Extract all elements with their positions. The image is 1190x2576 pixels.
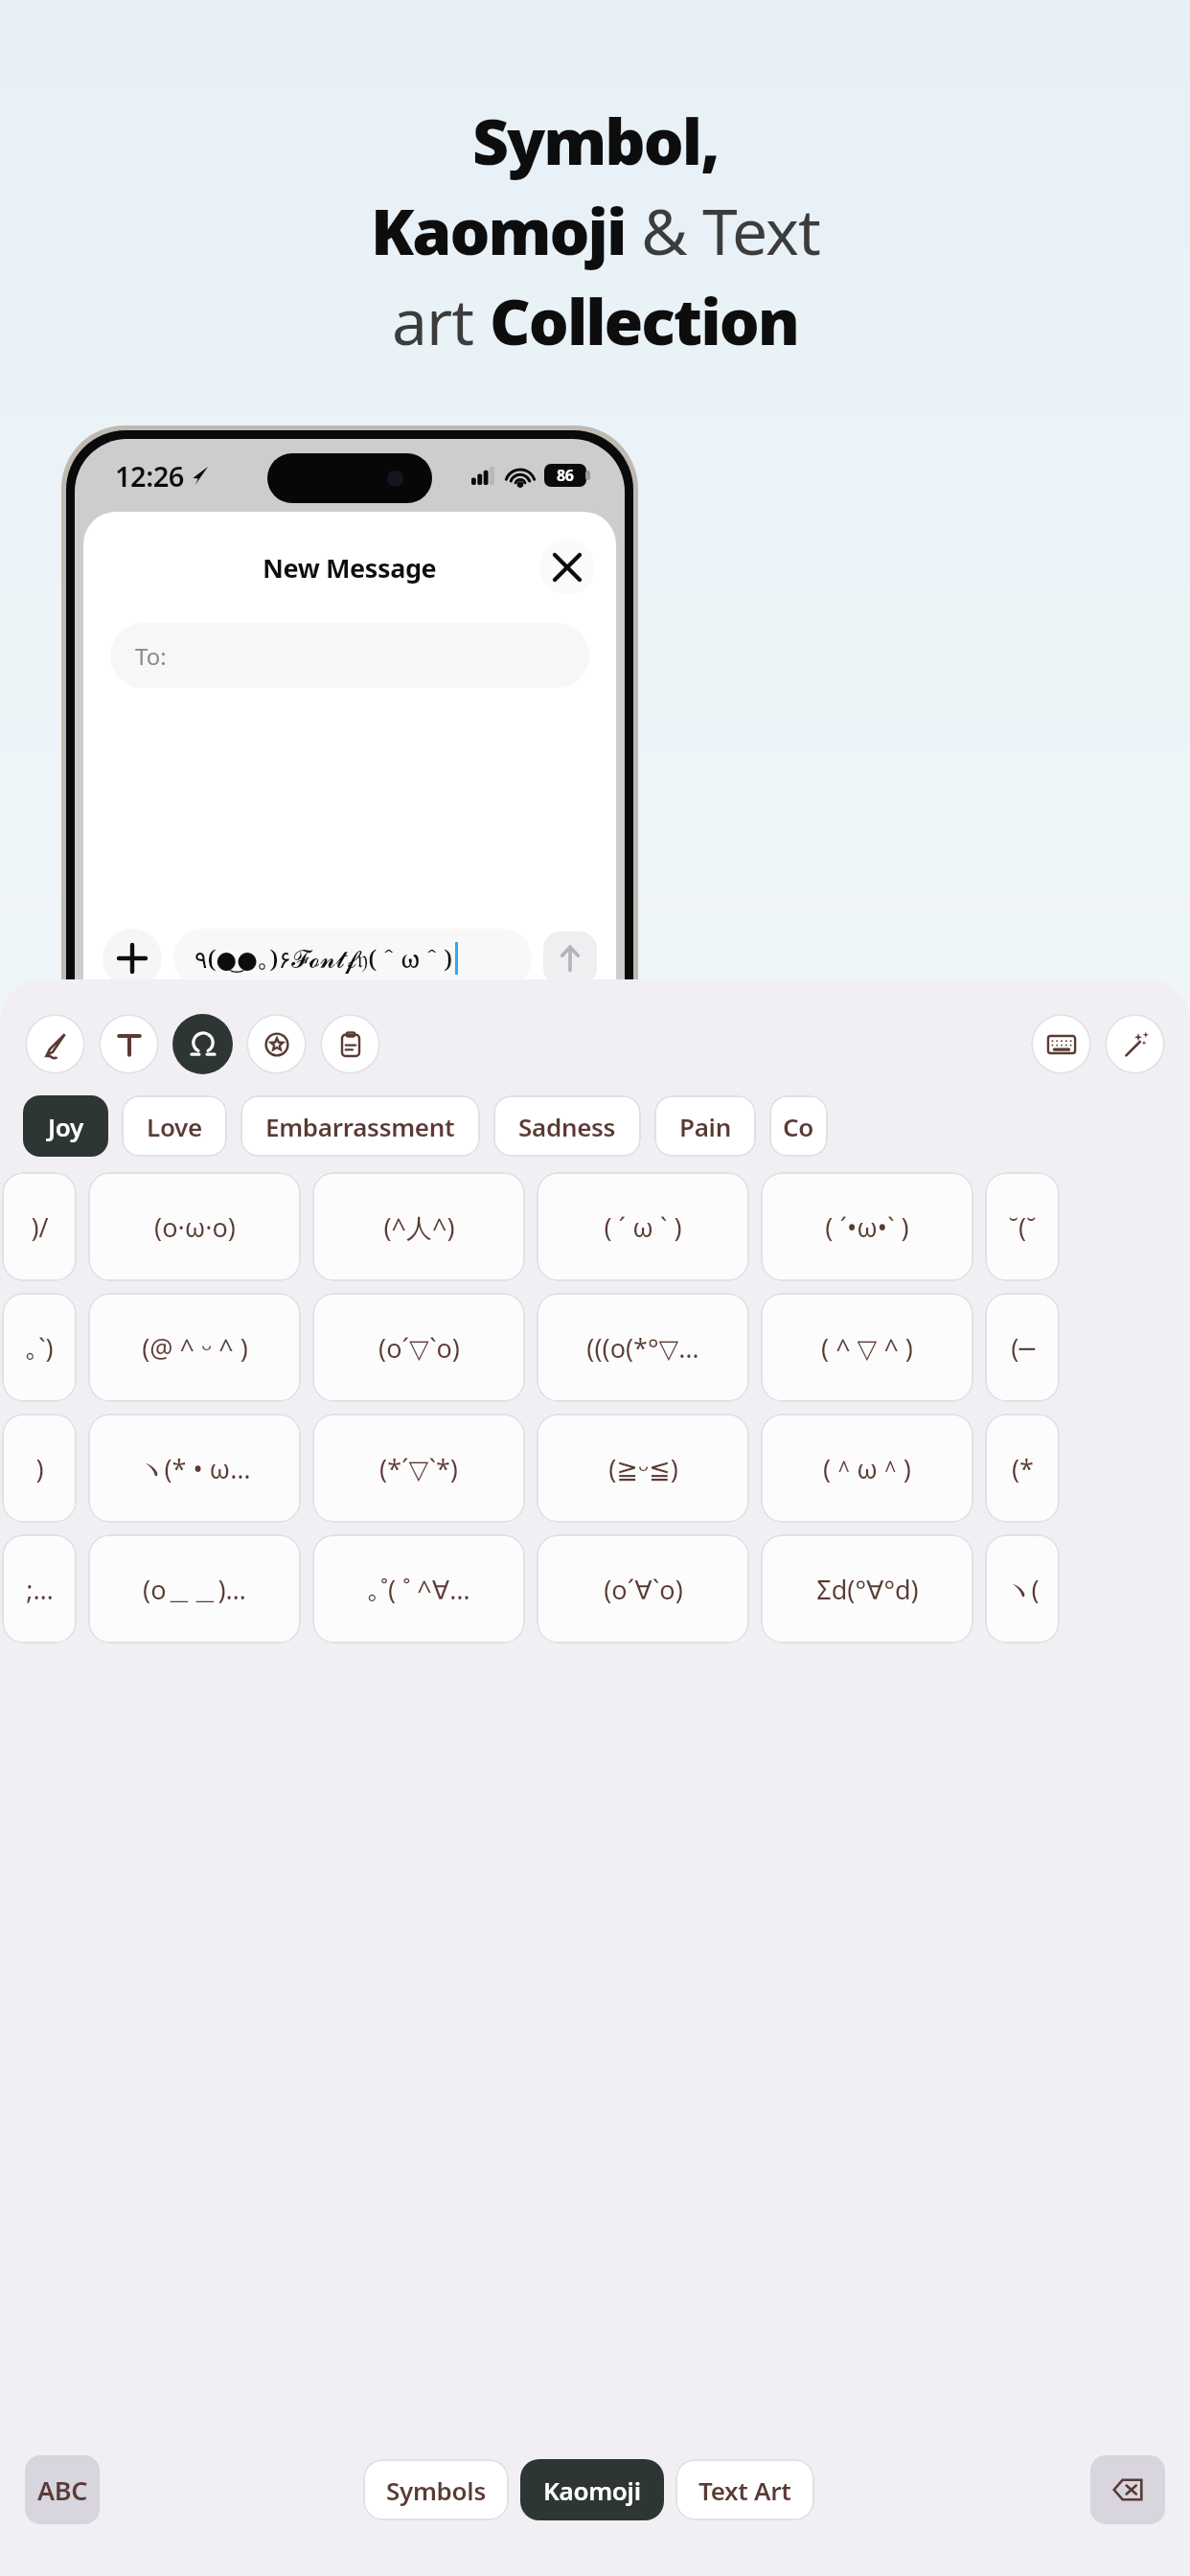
button[interactable]: (─ xyxy=(985,1293,1060,1402)
button[interactable]: Favorites xyxy=(246,1014,307,1074)
button[interactable]: )/ xyxy=(2,1172,77,1281)
staticText: (o·ω·o) xyxy=(154,1209,236,1245)
staticText: Text xyxy=(702,187,820,273)
staticText: ABC xyxy=(37,2472,88,2508)
staticText: Kaomoji xyxy=(371,187,626,273)
button[interactable]: Pain xyxy=(654,1095,756,1157)
button[interactable]: Kaomoji xyxy=(520,2459,664,2520)
staticText: (o＿＿)… xyxy=(143,1572,246,1607)
button[interactable]: (o·ω·o) xyxy=(88,1172,301,1281)
staticText: (^人^) xyxy=(383,1209,455,1245)
staticText: Symbols xyxy=(386,2473,486,2507)
staticText: ( ´•ω•` ) xyxy=(825,1209,909,1245)
staticText: ｡`) xyxy=(25,1330,54,1366)
button[interactable]: Text Art xyxy=(675,2459,814,2520)
staticText: (@ ^ ᵕ ^ ) xyxy=(142,1330,248,1366)
button[interactable]: ˘(˘ xyxy=(985,1172,1060,1281)
staticText: )/ xyxy=(31,1209,49,1245)
staticText: ( ´ ω ` ) xyxy=(604,1209,682,1245)
staticText: New Message xyxy=(263,550,437,586)
staticText: (o´∀`o) xyxy=(604,1572,683,1607)
staticText: & xyxy=(626,187,702,273)
button[interactable]: Co xyxy=(769,1095,828,1157)
staticText: (o´▽`o) xyxy=(378,1330,460,1366)
button[interactable]: ABC xyxy=(25,2455,100,2524)
button[interactable]: (@ ^ ᵕ ^ ) xyxy=(88,1293,301,1402)
staticText: Co xyxy=(783,1110,814,1143)
staticText: ヽ(* • ω… xyxy=(138,1451,251,1486)
button[interactable]: Symbols xyxy=(172,1014,233,1074)
button[interactable]: ;… xyxy=(2,1534,77,1644)
button[interactable]: (* xyxy=(985,1414,1060,1523)
staticText: Joy xyxy=(48,1110,83,1143)
staticText: (＾ω＾) xyxy=(823,1451,911,1486)
staticText: 86 xyxy=(557,465,574,486)
button[interactable]: ) xyxy=(2,1414,77,1523)
button[interactable]: Magic xyxy=(1105,1014,1165,1074)
button[interactable]: ( ^ ▽ ^ ) xyxy=(761,1293,973,1402)
staticText: ٩(●‿●｡)۶𝓕𝓸𝓷𝓽𝓯𝔶(＾ω＾) xyxy=(195,942,453,975)
staticText: Sadness xyxy=(518,1110,616,1143)
button[interactable]: Joy xyxy=(23,1095,108,1157)
button[interactable]: (^人^) xyxy=(312,1172,525,1281)
button[interactable]: ヽ(* • ω… xyxy=(88,1414,301,1523)
button[interactable]: Backspace xyxy=(1090,2455,1165,2524)
staticText: (((o(*°▽… xyxy=(586,1330,699,1366)
button[interactable]: Clipboard xyxy=(320,1014,380,1074)
staticText: To: xyxy=(135,640,167,672)
button[interactable]: Draw xyxy=(25,1014,85,1074)
button[interactable]: ｡˚( ˚ ^∀… xyxy=(312,1534,525,1644)
button[interactable]: Keyboard xyxy=(1031,1014,1091,1074)
button[interactable]: (o´∀`o) xyxy=(537,1534,749,1644)
staticText: ;… xyxy=(26,1572,54,1607)
staticText: Love xyxy=(147,1110,202,1143)
staticText: ˘(˘ xyxy=(1008,1209,1037,1245)
staticText: ヽ( xyxy=(1005,1572,1040,1607)
staticText: 12:26 xyxy=(115,457,184,494)
staticText: ｡˚( ˚ ^∀… xyxy=(367,1572,470,1607)
staticText: (* xyxy=(1012,1451,1034,1486)
button[interactable]: To: xyxy=(110,623,589,688)
staticText: Symbol, xyxy=(472,97,719,183)
button[interactable]: (≧ᵕ≦) xyxy=(537,1414,749,1523)
staticText: (≧ᵕ≦) xyxy=(608,1451,678,1486)
staticText: ) xyxy=(35,1451,44,1486)
button[interactable]: (o＿＿)… xyxy=(88,1534,301,1644)
button[interactable]: ٩(●‿●｡)۶𝓕𝓸𝓷𝓽𝓯𝔶(＾ω＾) xyxy=(173,929,532,988)
button[interactable]: (*´▽`*) xyxy=(312,1414,525,1523)
staticText: Σd(°∀°d) xyxy=(816,1572,919,1607)
staticText: Collection xyxy=(490,277,798,363)
button[interactable]: Text style xyxy=(99,1014,159,1074)
button[interactable]: Add attachment xyxy=(103,929,162,988)
staticText: ( ^ ▽ ^ ) xyxy=(821,1330,913,1366)
staticText: Text Art xyxy=(698,2473,791,2507)
staticText: Kaomoji xyxy=(543,2473,641,2507)
button[interactable]: ヽ( xyxy=(985,1534,1060,1644)
staticText: (*´▽`*) xyxy=(379,1451,458,1486)
button[interactable]: Close xyxy=(539,540,595,595)
button[interactable]: Symbols xyxy=(363,2459,509,2520)
button[interactable]: Send xyxy=(543,931,597,985)
button[interactable]: ( ´•ω•` ) xyxy=(761,1172,973,1281)
button[interactable]: ｡`) xyxy=(2,1293,77,1402)
button[interactable]: (o´▽`o) xyxy=(312,1293,525,1402)
button[interactable]: (＾ω＾) xyxy=(761,1414,973,1523)
staticText: (─ xyxy=(1011,1330,1035,1366)
button[interactable]: Embarrassment xyxy=(240,1095,480,1157)
button[interactable]: ( ´ ω ` ) xyxy=(537,1172,749,1281)
button[interactable]: Sadness xyxy=(493,1095,641,1157)
button[interactable]: Σd(°∀°d) xyxy=(761,1534,973,1644)
staticText: Pain xyxy=(679,1110,731,1143)
staticText: art xyxy=(392,277,490,363)
button[interactable]: (((o(*°▽… xyxy=(537,1293,749,1402)
staticText: Embarrassment xyxy=(265,1110,455,1143)
button[interactable]: Love xyxy=(122,1095,227,1157)
